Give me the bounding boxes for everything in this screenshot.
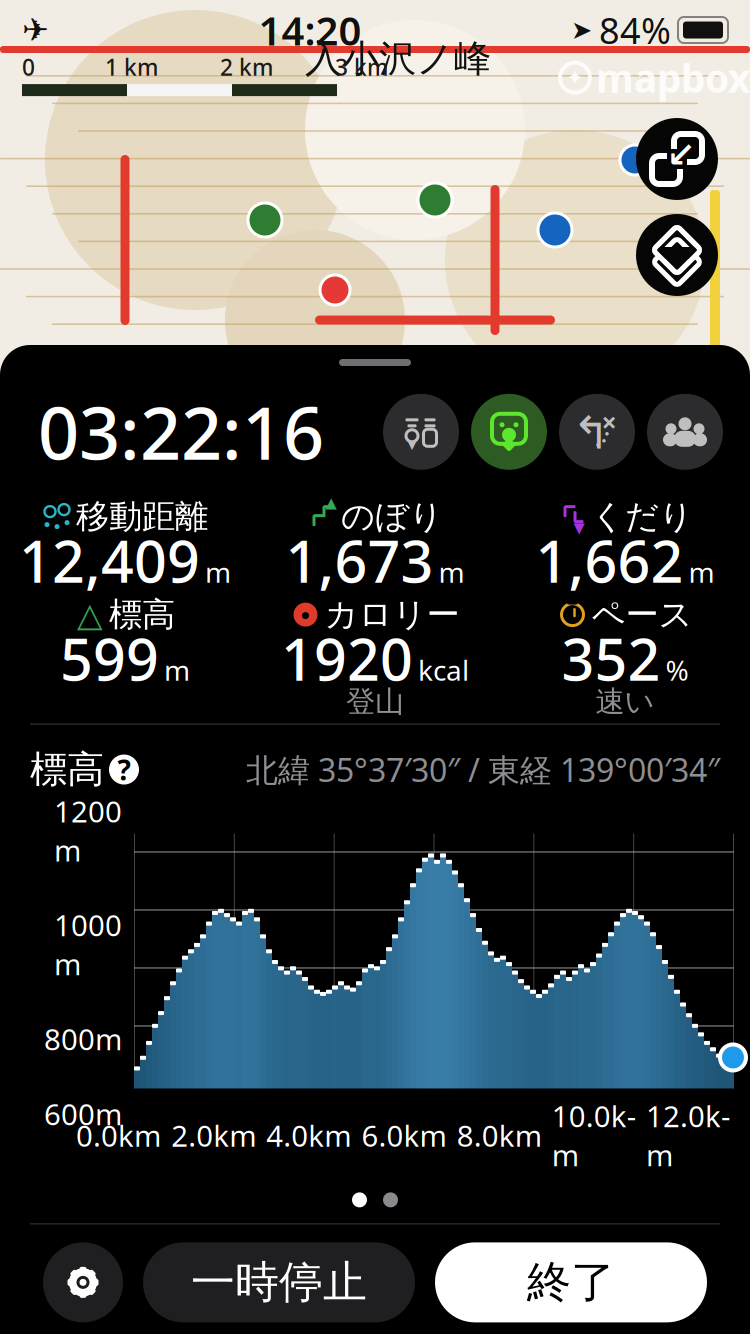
staticText: 2.0km: [171, 1116, 256, 1155]
staticText: 終了: [527, 1255, 615, 1309]
staticText: ✈: [22, 12, 49, 48]
staticText: △: [77, 596, 103, 633]
staticText: カロリー: [324, 594, 459, 635]
staticText: ↰: [572, 407, 610, 459]
staticText: ✦: [566, 66, 584, 90]
button[interactable]: About elevation: [104, 749, 144, 789]
staticText: mapbox: [596, 52, 750, 103]
staticText: 移動距離: [76, 496, 208, 537]
staticText: 0: [22, 52, 35, 82]
staticText: 4.0km: [266, 1116, 351, 1155]
staticText: m: [438, 553, 464, 591]
staticText: くだり: [591, 496, 693, 537]
staticText: ×: [601, 404, 616, 439]
button[interactable]: Map layers: [636, 214, 718, 296]
button[interactable]: Post a moment: [471, 394, 547, 470]
staticText: 12,409: [19, 522, 200, 599]
staticText: 10.0km: [552, 1096, 636, 1174]
staticText: 6.0km: [361, 1116, 446, 1155]
staticText: 標高: [109, 594, 175, 635]
staticText: 84%: [599, 6, 671, 54]
staticText: ▲: [325, 494, 336, 511]
staticText: 1,662: [535, 522, 683, 599]
staticText: 速い: [595, 684, 654, 720]
staticText: ➤: [571, 16, 592, 44]
staticText: 8.0km: [457, 1116, 542, 1155]
staticText: のぼり: [341, 496, 443, 537]
staticText: m: [164, 651, 190, 689]
button[interactable]: 終了: [435, 1242, 707, 1322]
staticText: ペース: [591, 594, 692, 635]
staticText: 2 km: [220, 52, 273, 82]
button[interactable]: 一時停止: [143, 1242, 415, 1322]
staticText: ?: [117, 751, 130, 788]
staticText: 800m: [44, 1019, 122, 1058]
staticText: 3 km: [335, 52, 388, 82]
staticText: 03:22:16: [38, 384, 324, 480]
button[interactable]: Members: [647, 394, 723, 470]
button[interactable]: Waypoints: [383, 394, 459, 470]
staticText: 1 km: [105, 52, 158, 82]
button[interactable]: Off-route alert: [559, 394, 635, 470]
staticText: 1,673: [285, 522, 433, 599]
staticText: 1200m: [54, 792, 122, 869]
staticText: m: [688, 553, 714, 591]
staticText: m: [205, 553, 231, 591]
staticText: ▾: [408, 436, 416, 454]
staticText: 一時停止: [191, 1255, 367, 1309]
staticText: 599: [60, 620, 159, 697]
staticText: %: [665, 651, 688, 689]
button[interactable]: Settings: [43, 1242, 123, 1322]
staticText: 600m: [44, 1094, 122, 1133]
staticText: 14:20: [258, 3, 361, 56]
staticText: 標高: [30, 747, 104, 792]
staticText: 0.0km: [76, 1116, 161, 1155]
staticText: 352: [561, 620, 660, 697]
staticText: ↙: [666, 135, 695, 175]
staticText: 北緯 35°37′30″ / 東経 139°00′34″: [246, 748, 720, 791]
staticText: 1920: [281, 620, 413, 697]
staticText: kcal: [418, 651, 469, 689]
staticText: 1000m: [54, 905, 122, 983]
staticText: ▼: [573, 519, 584, 536]
staticText: 登山: [346, 684, 404, 720]
button[interactable]: Expand map: [636, 118, 718, 200]
staticText: 入小沢ノ峰: [305, 36, 491, 82]
staticText: 12.0km: [646, 1096, 730, 1174]
